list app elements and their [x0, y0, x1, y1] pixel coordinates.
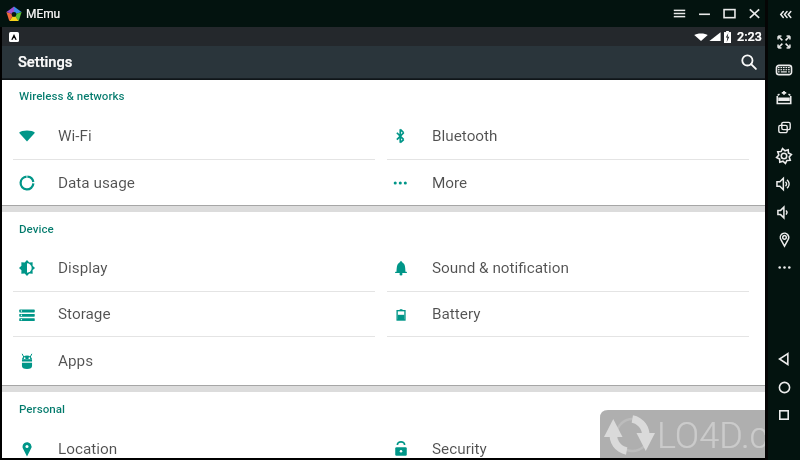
- staticText: MEmu: [26, 7, 61, 21]
- staticText: Security: [432, 440, 487, 458]
- button[interactable]: Menu: [667, 0, 692, 27]
- button[interactable]: Sound & notification: [374, 245, 765, 291]
- staticText: Personal: [19, 402, 65, 416]
- button[interactable]: Storage: [0, 292, 374, 336]
- button[interactable]: Back: [768, 345, 800, 372]
- button[interactable]: More: [768, 254, 800, 281]
- staticText: Wi-Fi: [58, 127, 92, 145]
- button[interactable]: Location: [0, 426, 374, 460]
- button[interactable]: Maximize: [717, 0, 742, 27]
- staticText: Apps: [58, 352, 94, 370]
- staticText: Wireless & networks: [19, 89, 125, 103]
- button[interactable]: Battery: [374, 292, 765, 336]
- button[interactable]: Recents: [768, 401, 800, 428]
- button[interactable]: Display: [0, 245, 374, 291]
- staticText: Device: [19, 222, 54, 236]
- button[interactable]: Close: [742, 0, 767, 27]
- button[interactable]: Apps: [0, 337, 374, 385]
- button[interactable]: Multi window: [768, 114, 800, 141]
- button[interactable]: Minimize: [692, 0, 717, 27]
- button[interactable]: Install APK: [768, 84, 800, 111]
- button[interactable]: Location: [768, 226, 800, 253]
- button[interactable]: Volume up: [768, 170, 800, 197]
- button[interactable]: Wi-Fi: [0, 112, 374, 159]
- button[interactable]: More: [374, 160, 765, 205]
- button[interactable]: Home: [768, 374, 800, 401]
- staticText: Display: [58, 259, 108, 277]
- button[interactable]: Collapse sidebar: [768, 1, 800, 28]
- staticText: Data usage: [58, 174, 135, 192]
- staticText: More: [432, 174, 468, 192]
- button[interactable]: Volume down: [768, 199, 800, 226]
- staticText: Storage: [58, 305, 111, 323]
- staticText: Sound & notification: [432, 259, 570, 277]
- button[interactable]: Settings: [768, 142, 800, 169]
- staticText: Settings: [18, 53, 73, 70]
- staticText: Battery: [432, 305, 481, 323]
- button[interactable]: Keyboard: [768, 56, 800, 83]
- button[interactable]: Security: [374, 426, 765, 460]
- staticText: Location: [58, 440, 118, 458]
- staticText: 2:23: [737, 29, 762, 44]
- button[interactable]: Fullscreen: [768, 28, 800, 55]
- staticText: LO4D.com: [657, 415, 800, 457]
- button[interactable]: Bluetooth: [374, 112, 765, 159]
- staticText: Bluetooth: [432, 127, 498, 145]
- button[interactable]: Search: [734, 47, 764, 77]
- button[interactable]: Data usage: [0, 160, 374, 205]
